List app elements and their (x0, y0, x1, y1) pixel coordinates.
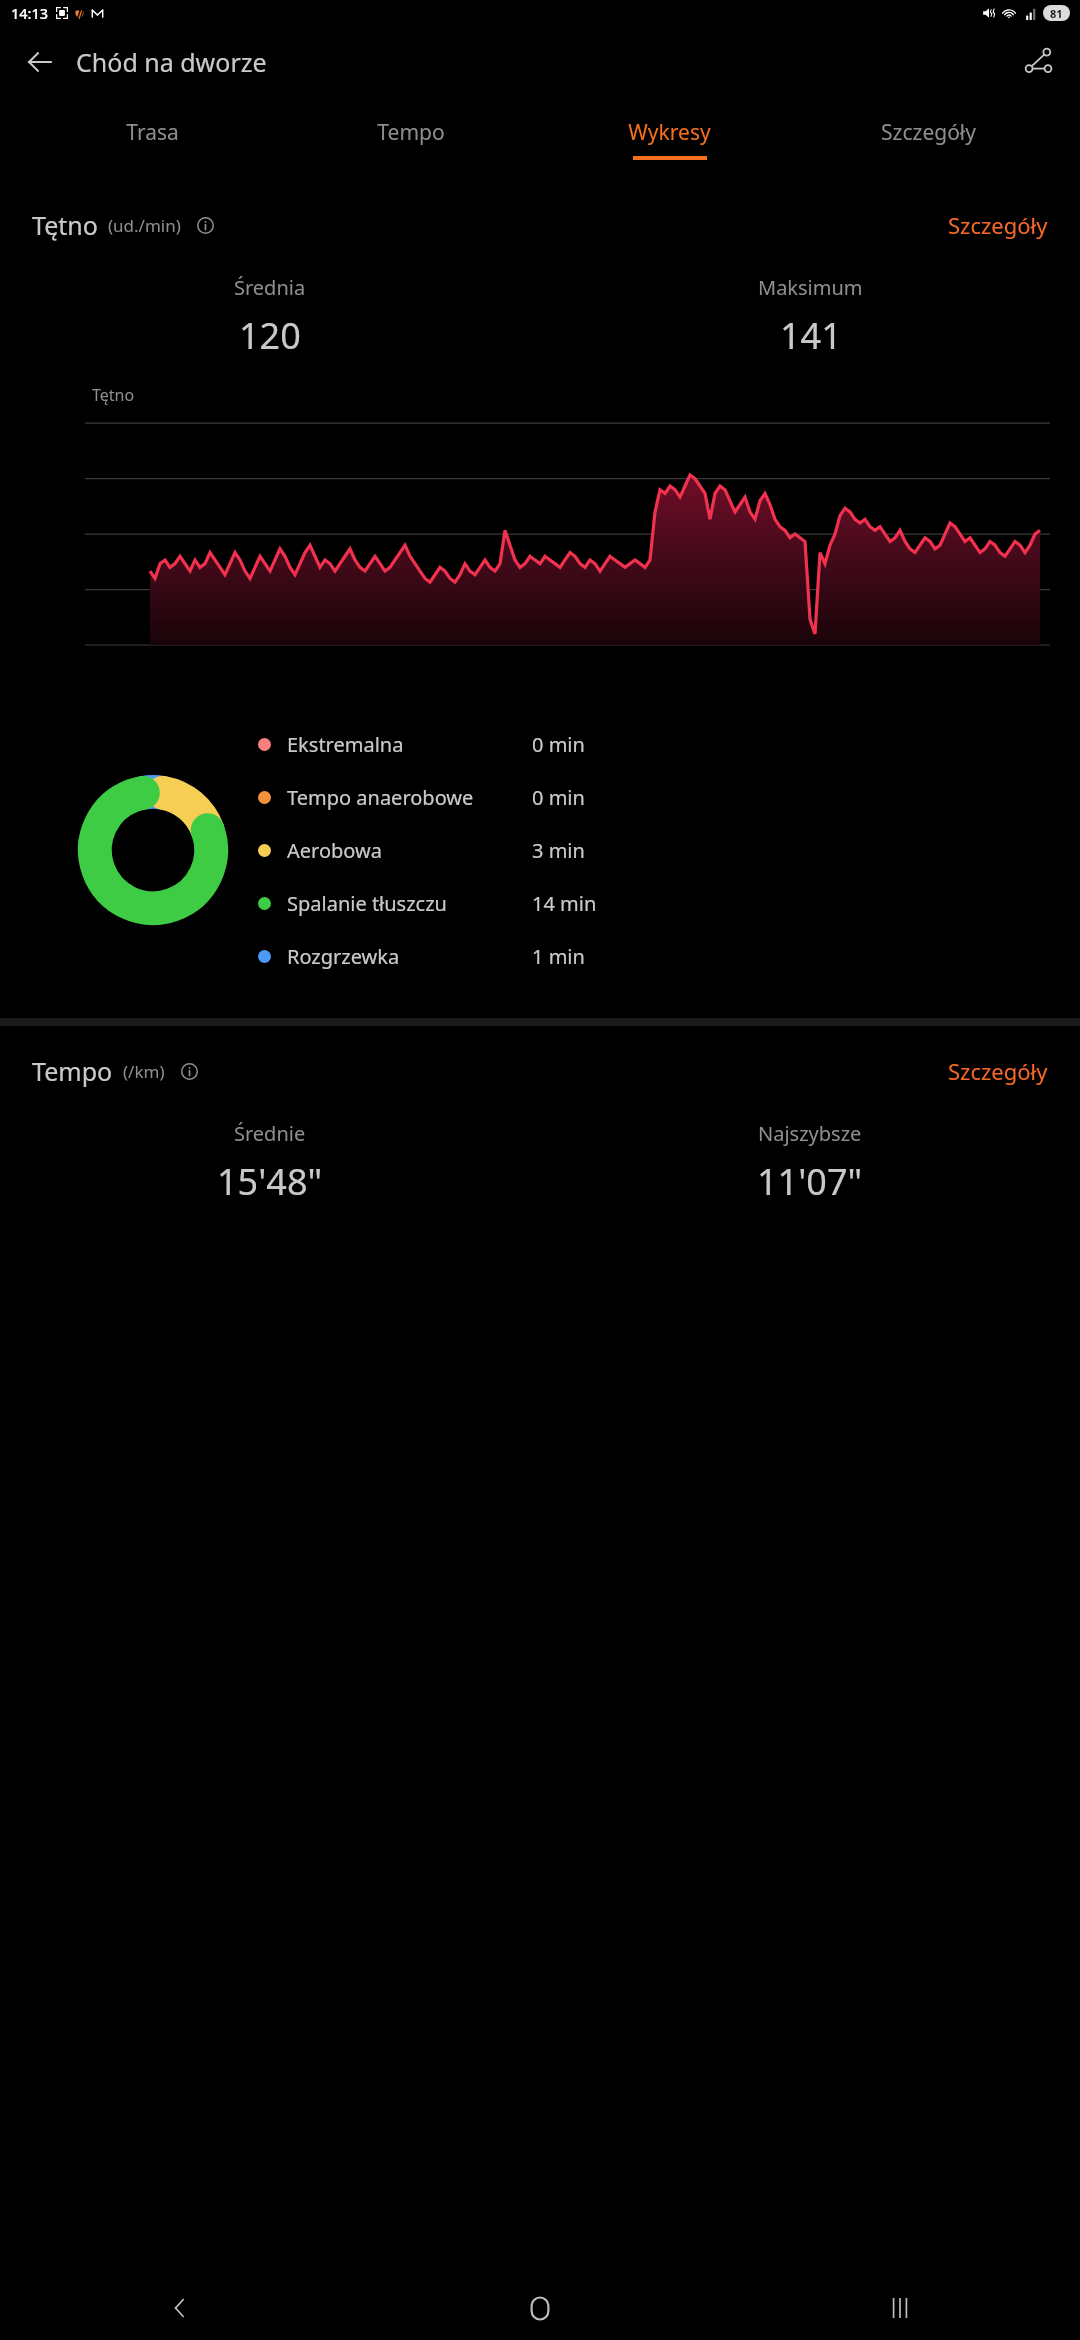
staticText: Rozgrzewka (287, 943, 400, 970)
staticText: Szczegóły (948, 210, 1048, 240)
staticText: Spalanie tłuszczu (287, 890, 447, 917)
staticText: Najszybsze (758, 1120, 862, 1147)
button[interactable]: Trasa (22, 98, 281, 180)
staticText: Trasa (126, 118, 179, 147)
staticText: Średnie (234, 1120, 306, 1147)
staticText: 3 min (532, 837, 585, 864)
staticText: Szczegóły (948, 1056, 1048, 1086)
staticText: 14 min (532, 890, 597, 917)
staticText: 120 (239, 311, 301, 360)
button[interactable]: Wstecz (12, 34, 68, 90)
staticText: Tempo (377, 118, 445, 147)
staticText: Średnia (234, 274, 306, 301)
staticText: (ud./min) (108, 214, 181, 237)
staticText: Tętno (32, 208, 98, 242)
staticText: 11'07" (757, 1157, 863, 1206)
staticText: Tempo anaerobowe (287, 784, 474, 811)
staticText: (/km) (123, 1060, 165, 1083)
staticText: 14:13 (11, 3, 49, 23)
staticText: 0 min (532, 731, 585, 758)
staticText: Chód na dworze (76, 45, 267, 79)
button[interactable]: Tempo (281, 98, 540, 180)
staticText: Tętno (92, 384, 135, 406)
staticText: Wykresy (628, 118, 711, 147)
button[interactable]: Wykresy (540, 98, 799, 180)
staticText: 0 min (532, 784, 585, 811)
button[interactable]: Informacje (190, 210, 220, 240)
staticText: Szczegóły (881, 118, 976, 147)
staticText: Tempo (32, 1054, 113, 1088)
staticText: 81 (1050, 6, 1063, 21)
button[interactable]: Ostatnie (720, 2276, 1080, 2340)
button[interactable]: Ekran główny (360, 2276, 720, 2340)
button[interactable]: Szczegóły (938, 204, 1058, 246)
button[interactable]: Informacje (174, 1056, 204, 1086)
button[interactable]: Wstecz (0, 2276, 360, 2340)
button[interactable]: Szczegóły (938, 1050, 1058, 1092)
staticText: 15'48" (217, 1157, 323, 1206)
button[interactable]: Szczegóły (799, 98, 1058, 180)
button[interactable]: Udostępnij (1012, 35, 1066, 89)
staticText: Aerobowa (287, 837, 382, 864)
staticText: Maksimum (758, 274, 863, 301)
staticText: Ekstremalna (287, 731, 404, 758)
staticText: 1 min (532, 943, 585, 970)
staticText: 141 (780, 311, 842, 360)
